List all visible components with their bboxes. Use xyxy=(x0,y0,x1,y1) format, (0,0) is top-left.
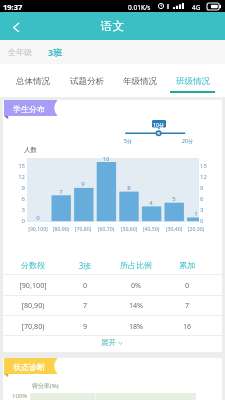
staticText: 14% xyxy=(111,300,161,310)
staticText: 9 xyxy=(71,180,95,188)
staticText: 全年级 xyxy=(8,47,32,57)
staticText: 6 xyxy=(200,195,213,203)
button[interactable]: 班级情况 xyxy=(166,64,219,97)
staticText: 7 xyxy=(60,300,110,310)
staticText: 0 xyxy=(162,280,212,290)
staticText: 16 xyxy=(162,321,212,331)
staticText: 0 xyxy=(26,214,50,222)
staticText: 6 xyxy=(12,195,25,203)
staticText: 语文 xyxy=(101,19,124,33)
staticText: 9 xyxy=(200,184,213,192)
staticText: 9 xyxy=(12,184,25,192)
staticText: 16 xyxy=(94,155,118,163)
staticText: 3班 xyxy=(48,46,63,58)
staticText: 5 xyxy=(162,195,186,203)
staticText: 4G xyxy=(192,3,201,12)
staticText: 年级情况 xyxy=(123,76,157,87)
staticText: [90,100] xyxy=(24,225,52,232)
button[interactable]: 试题分析 xyxy=(60,64,113,97)
staticText: 人数 xyxy=(24,146,37,154)
staticText: 得分率(%) xyxy=(32,382,59,390)
button[interactable]: 10分 xyxy=(121,115,211,147)
staticText: 100% xyxy=(12,392,28,400)
staticText: 5分 xyxy=(124,137,133,144)
staticText: 18% xyxy=(111,321,161,331)
staticText: 总体情况 xyxy=(16,76,50,87)
staticText: 3 xyxy=(12,206,25,214)
staticText: 10分 xyxy=(153,121,165,128)
staticText: 7 xyxy=(162,300,212,310)
button[interactable]: Back xyxy=(0,12,30,40)
staticText: [40,50) xyxy=(137,225,165,232)
staticText: 试题分析 xyxy=(70,76,104,87)
staticText: 12 xyxy=(12,173,25,181)
staticText: [20,30) xyxy=(182,225,210,232)
button[interactable]: 展开 xyxy=(82,336,142,349)
staticText: 20分 xyxy=(182,137,194,144)
button[interactable]: 全年级 xyxy=(8,47,32,57)
button[interactable]: 总体情况 xyxy=(6,64,60,97)
staticText: 19:37 xyxy=(3,2,23,12)
staticText: 0.01K/s xyxy=(128,3,151,12)
staticText: 4 xyxy=(139,199,163,207)
staticText: 分数段 xyxy=(8,260,58,270)
staticText: 8 xyxy=(117,184,141,192)
staticText: 0 xyxy=(200,217,213,225)
staticText: [80,90) xyxy=(8,300,58,310)
staticText: 15 xyxy=(12,162,25,170)
staticText: [50,60) xyxy=(115,225,143,232)
staticText: [70,80) xyxy=(8,321,58,331)
button[interactable]: 3班 xyxy=(48,46,63,58)
staticText: 状态诊断 xyxy=(13,362,45,372)
staticText: [80,90) xyxy=(47,225,75,232)
staticText: 0% xyxy=(111,280,161,290)
staticText: 班级情况 xyxy=(176,76,210,87)
staticText: 3 xyxy=(200,206,213,214)
staticText: 15 xyxy=(200,162,213,170)
staticText: [60,70) xyxy=(92,225,120,232)
staticText: 展开 xyxy=(101,338,116,347)
staticText: 12 xyxy=(200,173,213,181)
button[interactable]: 年级情况 xyxy=(113,64,166,97)
staticText: 所占比例 xyxy=(111,260,161,270)
staticText: [90,100] xyxy=(8,280,58,290)
staticText: 学生分布 xyxy=(13,104,45,114)
staticText: 0 xyxy=(12,217,25,225)
staticText: [70,80) xyxy=(69,225,97,232)
staticText: 7 xyxy=(49,188,73,196)
staticText: 累加 xyxy=(162,260,212,270)
staticText: 0 xyxy=(60,280,110,290)
staticText: 9 xyxy=(60,321,110,331)
staticText: 1 xyxy=(184,210,208,218)
staticText: 3班 xyxy=(60,260,110,271)
staticText: [30,40) xyxy=(160,225,188,232)
